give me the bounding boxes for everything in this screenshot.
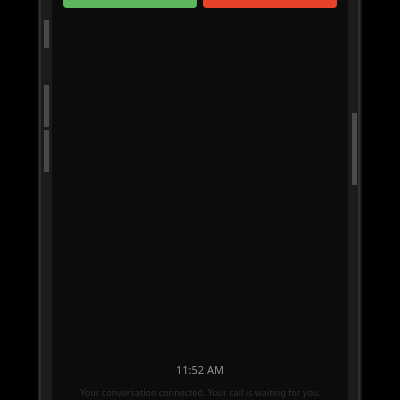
button[interactable]: Accept [63, 0, 197, 8]
button[interactable]: Decline [203, 0, 337, 8]
staticText: 11:52 AM [176, 362, 224, 377]
staticText: Your conversation connected. Your call i… [80, 386, 321, 398]
